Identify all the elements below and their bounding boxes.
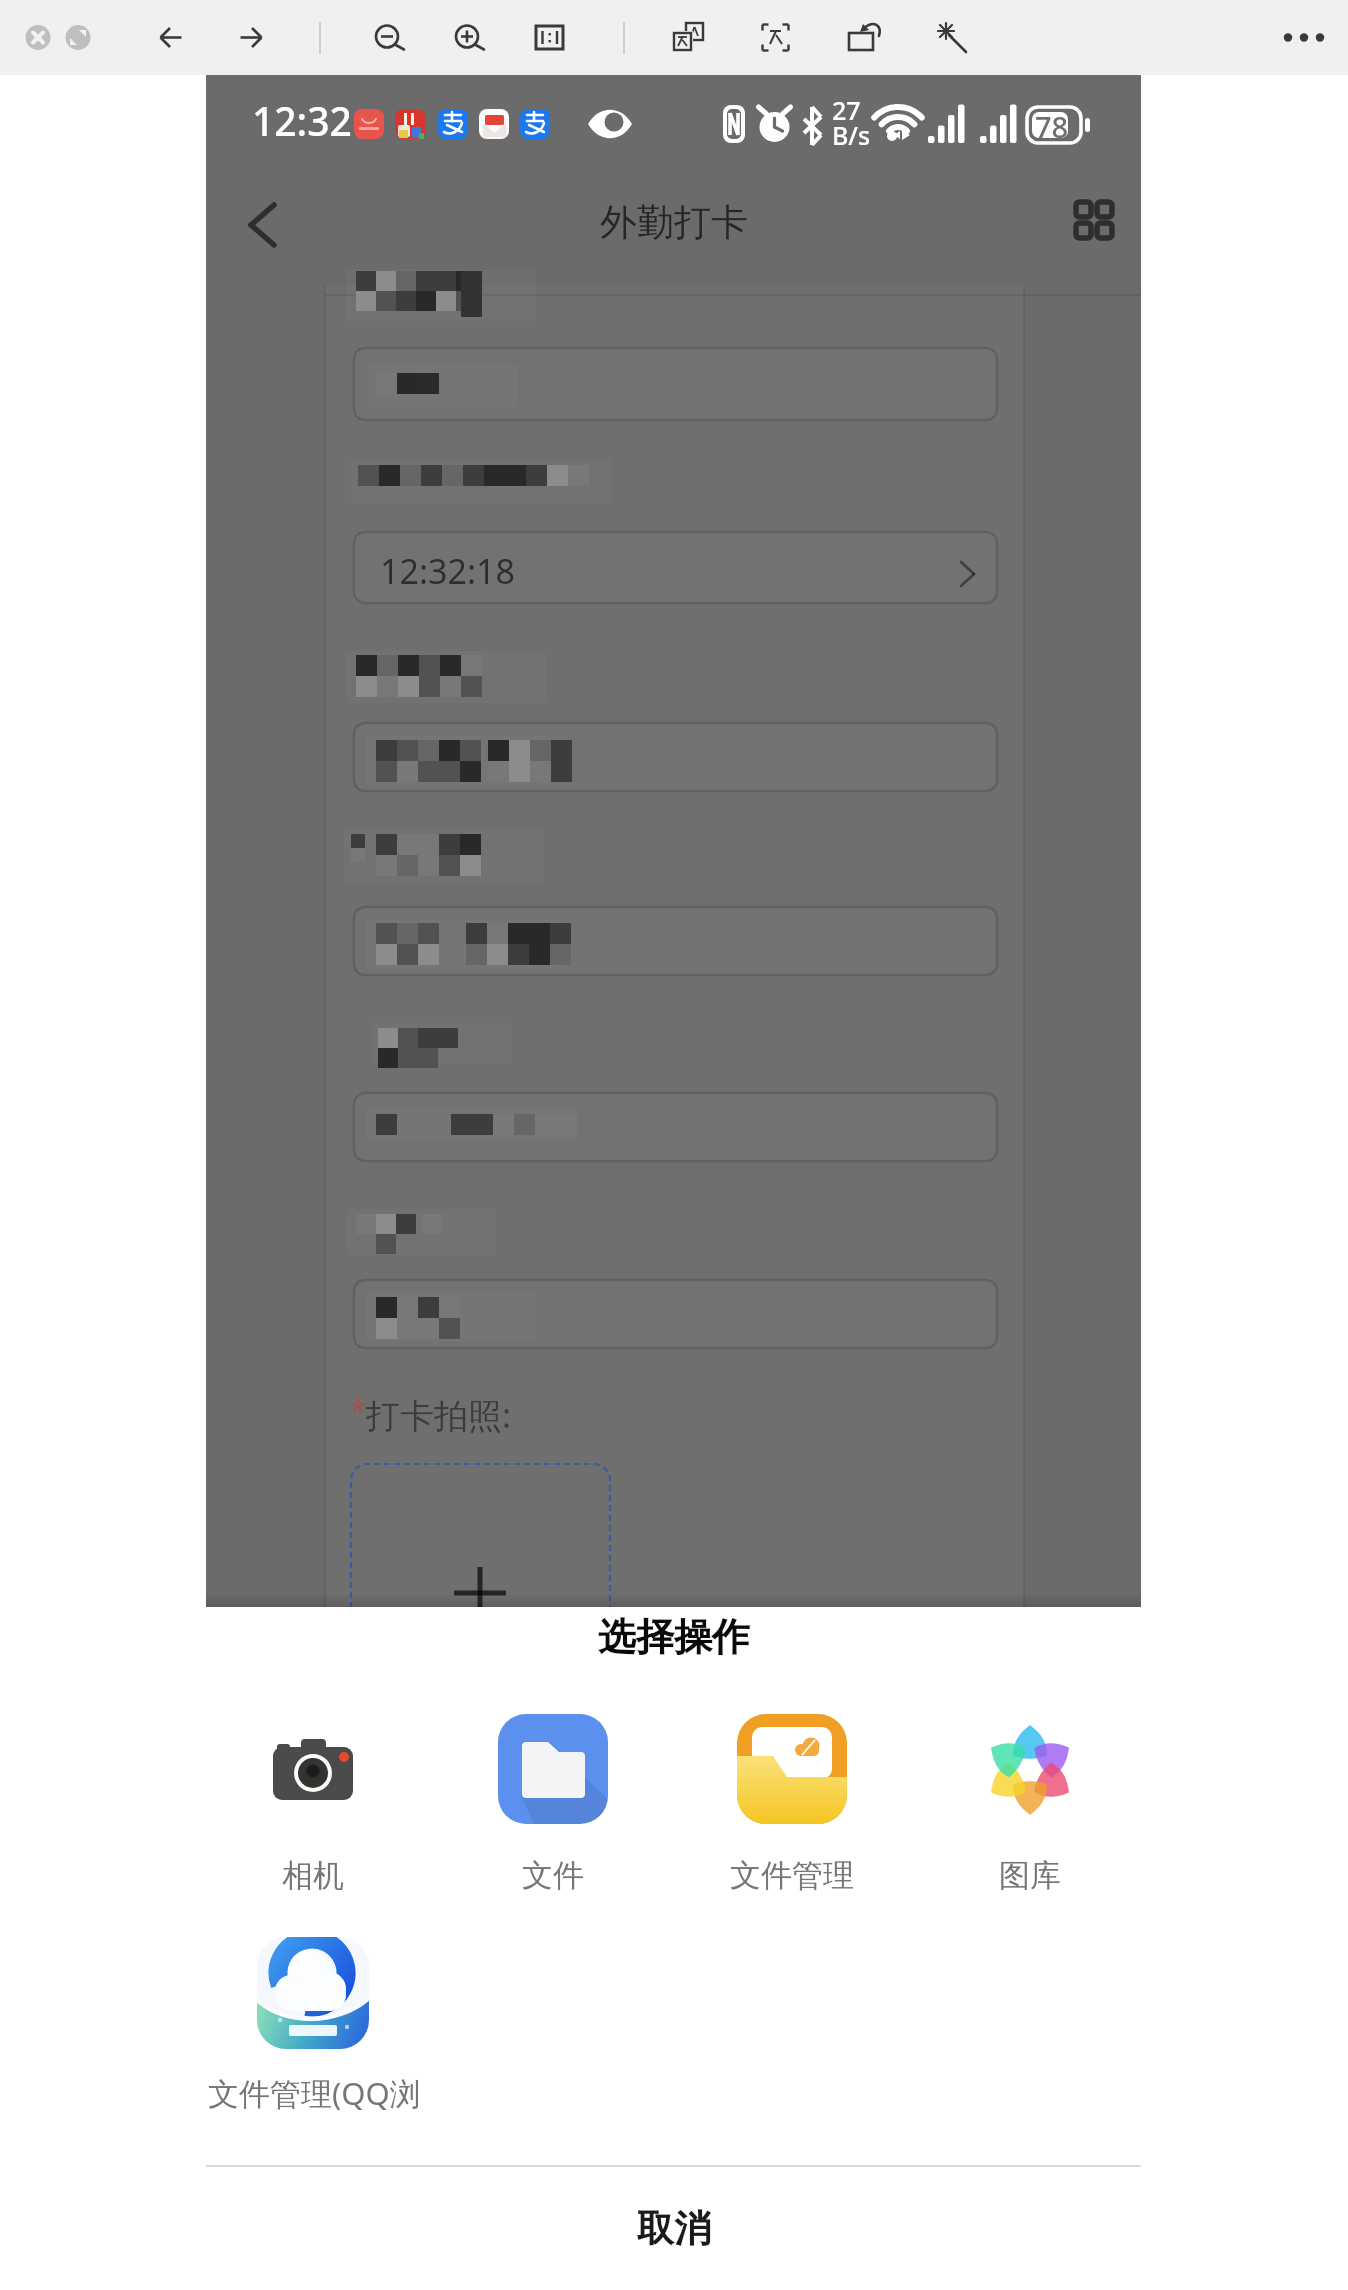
- button[interactable]: 文件管理(QQ浏: [206, 1932, 426, 2122]
- staticText: 相机: [282, 1856, 344, 1895]
- button[interactable]: Navigate back: [218, 180, 308, 270]
- button[interactable]: Zoom in: [445, 13, 495, 63]
- staticText: 文件管理: [730, 1856, 854, 1895]
- button[interactable]: Reject: [60, 21, 94, 55]
- staticText: 选择操作: [598, 1613, 750, 1661]
- button[interactable]: Translate: [662, 13, 712, 63]
- staticText: 文件管理(QQ浏: [208, 2072, 421, 2114]
- staticText: *: [349, 1389, 367, 1433]
- staticText: 取消: [637, 2205, 711, 2252]
- button[interactable]: Grid menu: [1050, 176, 1140, 266]
- button[interactable]: 文件: [443, 1714, 663, 1914]
- button[interactable]: Forward: [227, 13, 277, 63]
- button[interactable]: Back: [148, 13, 198, 63]
- button[interactable]: Enhance: [924, 13, 974, 63]
- button[interactable]: 文件管理: [682, 1714, 902, 1914]
- button[interactable]: Extract text: [750, 13, 800, 63]
- staticText: 12:32:18: [380, 548, 515, 594]
- staticText: 27 B/s: [832, 93, 871, 153]
- staticText: 图库: [999, 1856, 1061, 1895]
- button[interactable]: 相机: [203, 1714, 423, 1914]
- button[interactable]: 取消: [0, 2167, 1348, 2290]
- staticText: 打卡拍照:: [366, 1392, 512, 1438]
- button[interactable]: Rotate: [837, 13, 887, 63]
- staticText: 12:32: [252, 94, 352, 147]
- staticText: 外勤打卡: [600, 199, 748, 246]
- button[interactable]: 图库: [920, 1714, 1140, 1914]
- button[interactable]: Actual size: [525, 13, 575, 63]
- button[interactable]: Close: [20, 21, 54, 55]
- staticText: 78: [1035, 107, 1069, 146]
- button[interactable]: Zoom out: [366, 13, 416, 63]
- button[interactable]: More options: [1278, 13, 1328, 63]
- staticText: 文件: [522, 1856, 584, 1895]
